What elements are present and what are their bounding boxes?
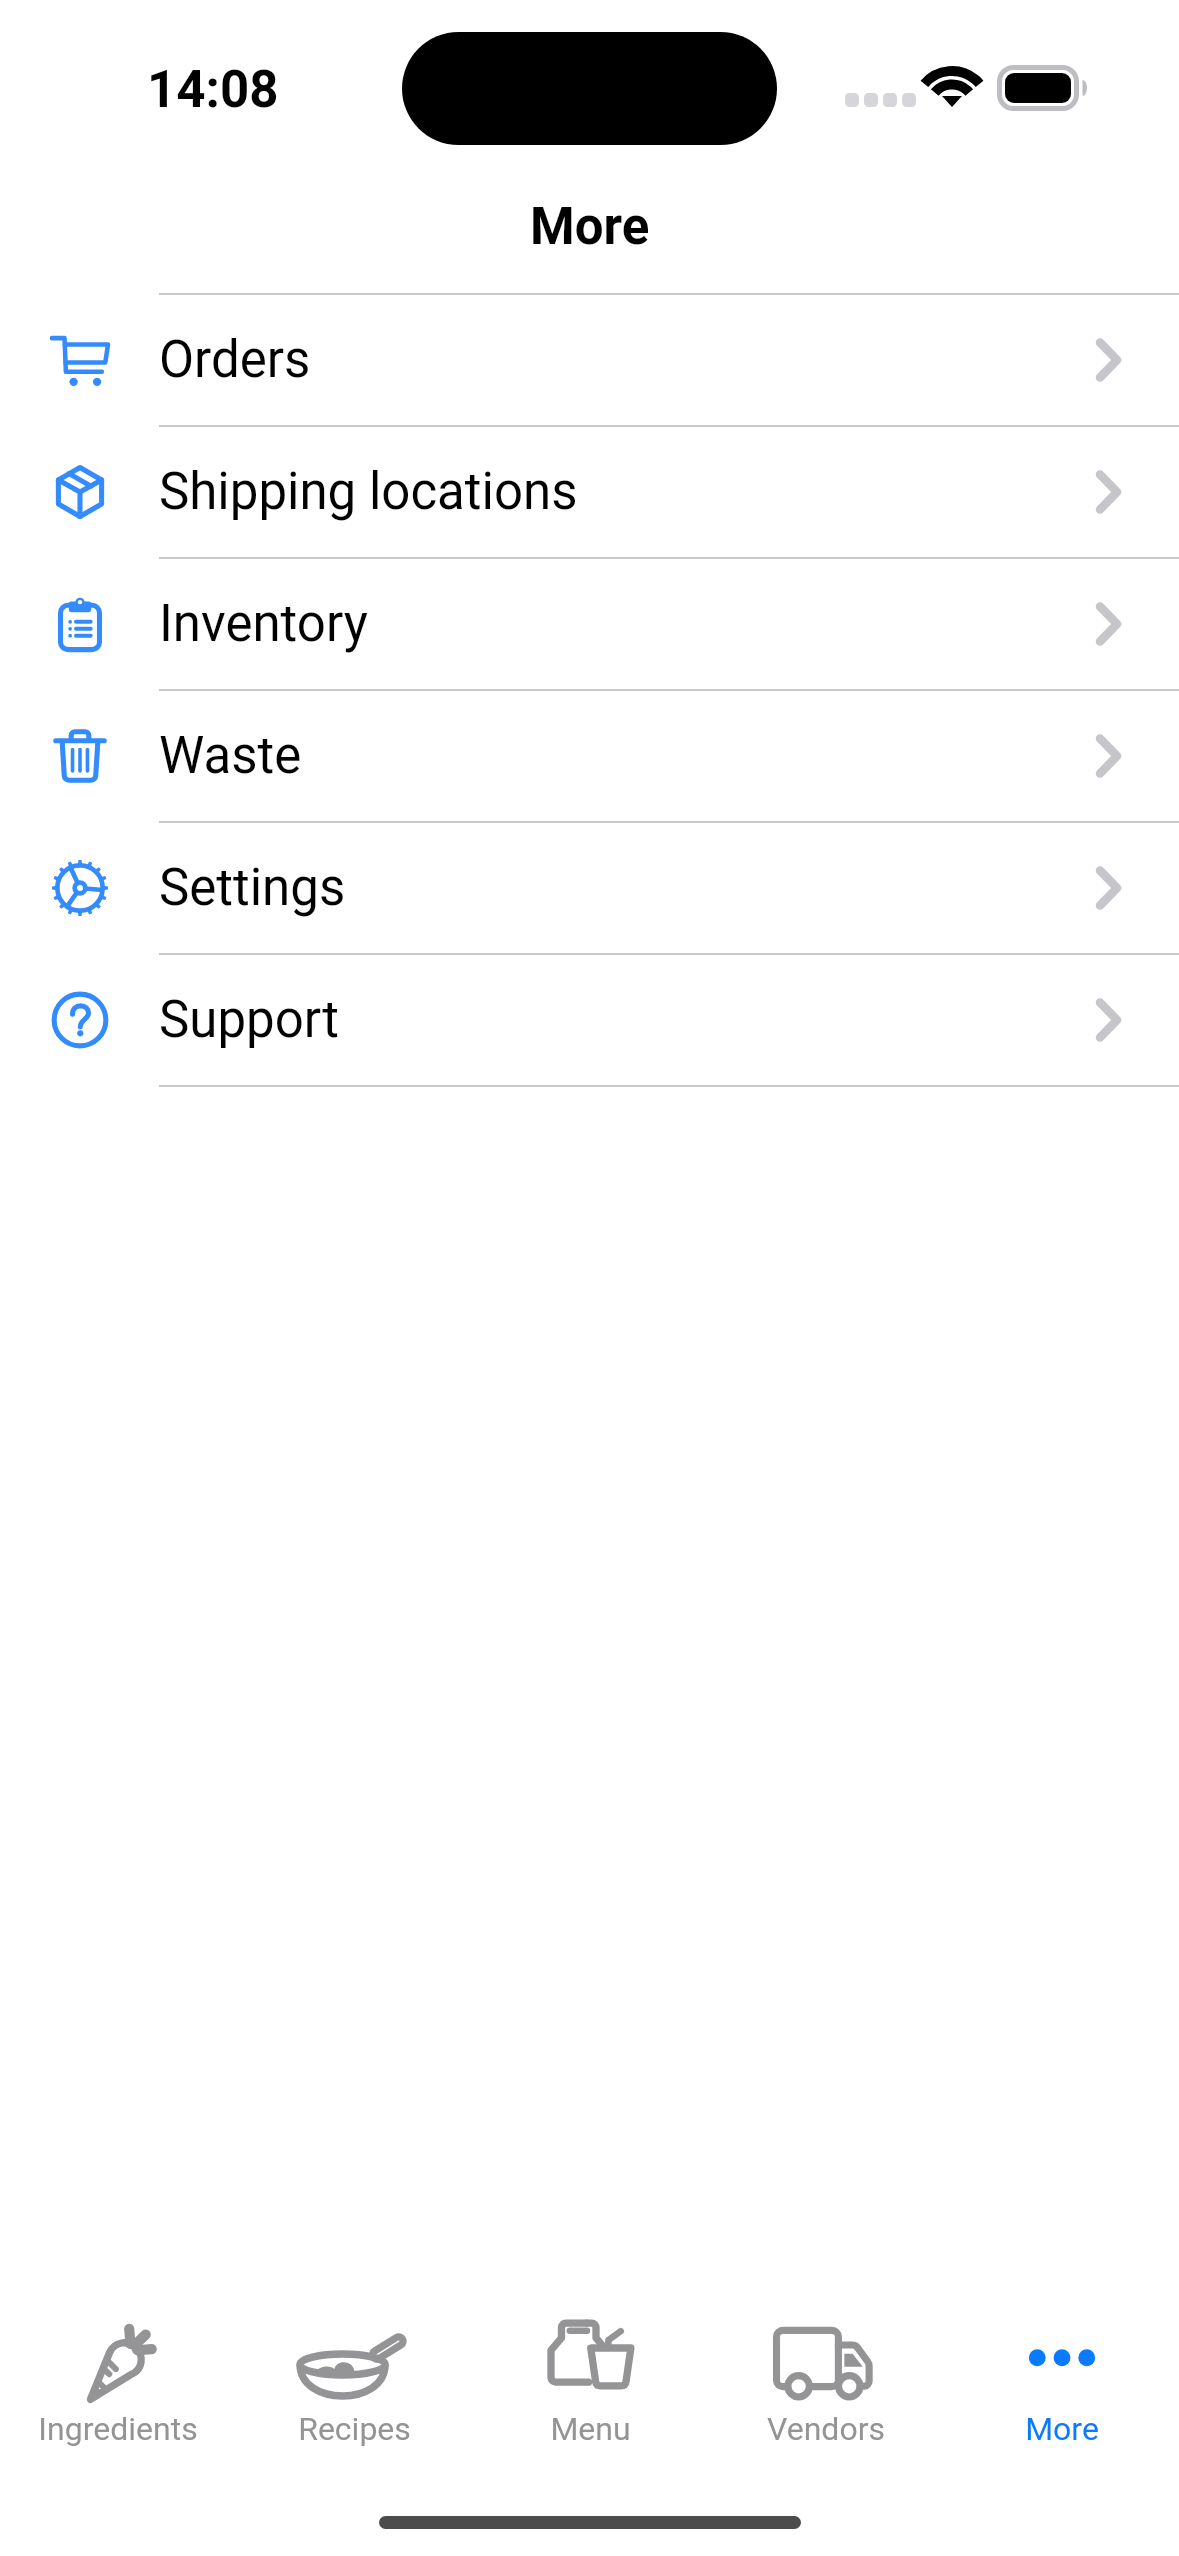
staticText: Ingredients xyxy=(38,2410,198,2448)
staticText: Inventory xyxy=(159,594,1076,654)
button[interactable]: Settings xyxy=(0,823,1179,953)
staticText: Menu xyxy=(550,2410,631,2448)
staticText: 14:08 xyxy=(147,60,279,120)
button[interactable]: Ingredients xyxy=(0,2316,236,2456)
button[interactable]: Orders xyxy=(0,295,1179,425)
button[interactable]: Menu xyxy=(472,2316,708,2456)
staticText: More xyxy=(1025,2410,1099,2448)
button[interactable]: More xyxy=(944,2316,1179,2456)
button[interactable]: Inventory xyxy=(0,559,1179,689)
button[interactable]: Shipping locations xyxy=(0,427,1179,557)
staticText: Waste xyxy=(159,726,1076,786)
staticText: Vendors xyxy=(767,2410,885,2448)
button[interactable]: Waste xyxy=(0,691,1179,821)
staticText: Recipes xyxy=(298,2410,411,2448)
staticText: Orders xyxy=(159,330,1076,390)
staticText: Settings xyxy=(159,858,1076,918)
staticText: Shipping locations xyxy=(159,462,1076,522)
button[interactable]: Vendors xyxy=(708,2316,944,2456)
staticText: Support xyxy=(159,990,1076,1050)
button[interactable]: Support xyxy=(0,955,1179,1085)
staticText: More xyxy=(530,197,650,257)
button[interactable]: Recipes xyxy=(236,2316,472,2456)
